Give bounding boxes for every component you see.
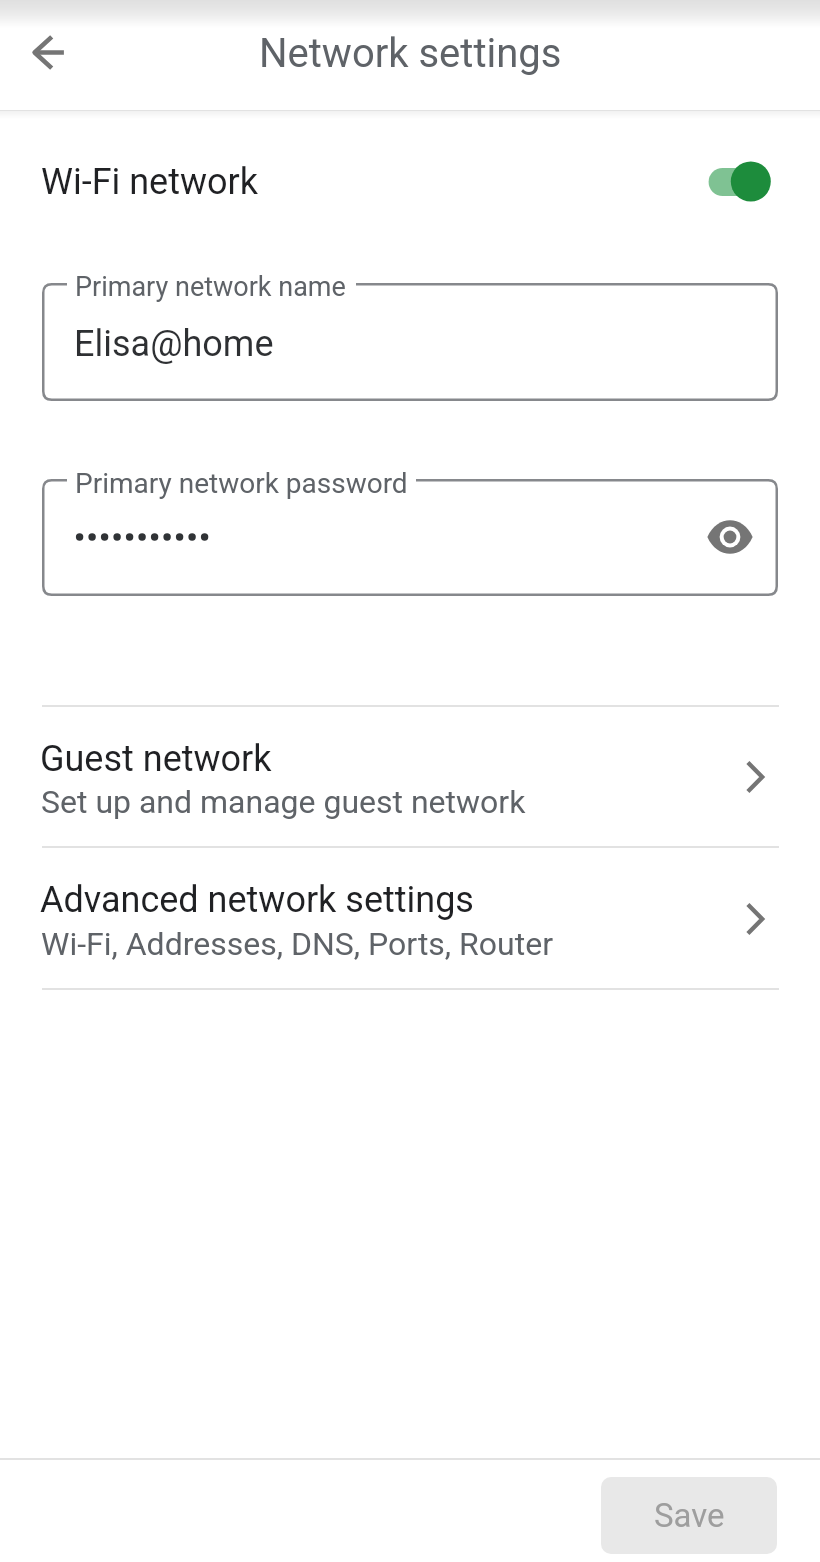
staticText: Network settings — [259, 30, 562, 77]
button[interactable]: Guest network — [0, 707, 820, 846]
staticText: Advanced network settings — [40, 879, 474, 921]
button[interactable]: Show password — [695, 502, 765, 572]
staticText: Set up and manage guest network — [41, 783, 526, 821]
staticText: Guest network — [40, 738, 272, 780]
staticText: Wi-Fi, Addresses, DNS, Ports, Router — [41, 925, 553, 963]
button[interactable]: Primary network password — [42, 479, 778, 596]
button[interactable]: Advanced network settings — [0, 848, 820, 988]
staticText: Primary network name — [75, 271, 346, 303]
button[interactable]: Save — [601, 1477, 777, 1554]
staticText: Primary network password — [75, 467, 408, 500]
button[interactable]: Toggle Wi-Fi network — [700, 151, 780, 213]
staticText: Save — [654, 1496, 725, 1535]
staticText: Wi-Fi network — [41, 161, 259, 203]
button[interactable]: Primary network name — [42, 283, 778, 401]
staticText: Elisa@home — [74, 323, 274, 365]
button[interactable]: Back — [8, 12, 88, 92]
button[interactable]: Wi-Fi network — [0, 120, 820, 240]
